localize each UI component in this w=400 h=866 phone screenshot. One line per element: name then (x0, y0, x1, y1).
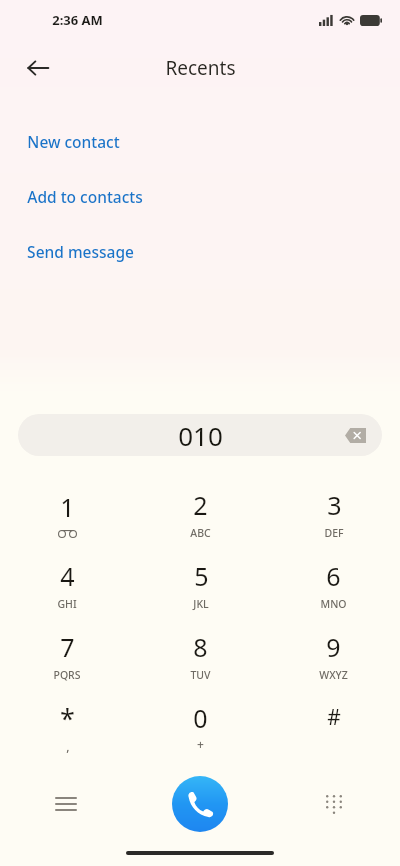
button[interactable]: # (267, 691, 400, 762)
button[interactable]: 4 (0, 549, 134, 620)
button[interactable]: New contact (0, 114, 400, 169)
staticText: 4 (60, 559, 75, 593)
staticText: + (197, 736, 204, 752)
staticText: 0 (193, 701, 208, 735)
staticText: 5 (194, 559, 209, 593)
button[interactable]: Backspace (340, 420, 370, 450)
staticText: * (60, 700, 75, 737)
staticText: JKL (193, 597, 209, 611)
staticText: New contact (27, 131, 120, 152)
staticText: 6 (326, 559, 341, 593)
staticText: , (66, 738, 70, 754)
button[interactable]: Send message (0, 224, 400, 279)
button[interactable]: Back (14, 44, 62, 92)
button[interactable]: 2 (134, 478, 267, 549)
staticText: MNO (320, 597, 347, 611)
staticText: TUV (190, 668, 211, 682)
staticText: GHI (57, 597, 77, 611)
staticText: 2:36 AM (52, 11, 103, 29)
staticText: PQRS (53, 668, 81, 682)
button[interactable]: * (0, 691, 134, 762)
button[interactable]: Call (172, 776, 228, 832)
staticText: 010 (178, 418, 223, 453)
staticText: 9 (326, 630, 341, 664)
staticText: 2 (193, 488, 208, 522)
button[interactable]: 9 (267, 620, 400, 691)
staticText: 8 (193, 630, 208, 664)
staticText: # (327, 703, 341, 732)
staticText: DEF (324, 526, 344, 540)
button[interactable]: 6 (267, 549, 400, 620)
button[interactable]: Add to contacts (0, 169, 400, 224)
staticText: WXYZ (319, 668, 348, 682)
staticText: Add to contacts (27, 186, 143, 207)
button[interactable]: 3 (267, 478, 400, 549)
button[interactable]: Menu (42, 780, 90, 828)
staticText: Recents (165, 55, 236, 81)
button[interactable]: 010 (18, 414, 382, 456)
button[interactable]: 8 (134, 620, 267, 691)
button[interactable]: 5 (134, 549, 267, 620)
staticText: 7 (60, 630, 75, 664)
button[interactable]: 1 (0, 478, 134, 549)
staticText: Send message (27, 241, 134, 262)
button[interactable]: 0 (134, 691, 267, 762)
button[interactable]: 7 (0, 620, 134, 691)
button[interactable]: Dialpad (310, 780, 358, 828)
staticText: 1 (60, 490, 75, 524)
staticText: ABC (190, 526, 211, 540)
staticText: 3 (327, 488, 342, 522)
